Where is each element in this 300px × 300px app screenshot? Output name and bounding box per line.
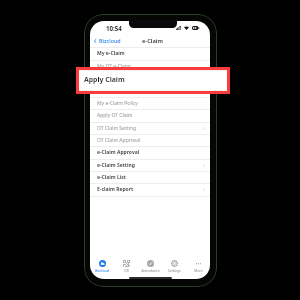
staticText: OT Claim Setting <box>97 125 136 132</box>
staticText: Apply OT Claim <box>97 112 133 119</box>
staticText: Apply Claim <box>97 75 127 82</box>
staticText: QR <box>124 268 129 273</box>
button[interactable]: OT Claim Approval <box>90 134 210 146</box>
button[interactable]: My OT e-Claim <box>90 60 210 72</box>
staticText: My OT e-Claim <box>97 63 131 70</box>
staticText: E-claim Report <box>97 186 134 193</box>
button[interactable]: E-claim Report <box>90 183 210 195</box>
staticText: e-Claim Approval <box>97 149 140 156</box>
button[interactable]: QR Scan <box>114 255 138 276</box>
button[interactable]: My e-Claim <box>90 47 210 59</box>
staticText: My e-Claim Policy <box>97 100 138 107</box>
other: Settings <box>171 260 178 267</box>
button[interactable]: Settings <box>162 255 186 276</box>
button[interactable]: Bizcloud <box>93 34 121 47</box>
other: Attendance <box>147 260 154 267</box>
button[interactable]: Apply OT Claim <box>90 109 210 121</box>
button[interactable]: OT Claim Setting <box>90 122 210 134</box>
button[interactable]: Apply e-Claim <box>90 84 210 96</box>
button[interactable]: e-Claim List <box>90 171 210 183</box>
staticText: Settings <box>168 268 181 273</box>
button[interactable]: Attendance <box>138 255 162 276</box>
button[interactable]: e-Claim Setting <box>90 159 210 171</box>
staticText: 10:54 <box>106 24 122 32</box>
staticText: More <box>194 268 203 273</box>
button[interactable]: More <box>186 255 210 276</box>
other: Bizcloud <box>99 260 106 267</box>
staticText: Attendance <box>141 268 160 273</box>
staticText: Apply e-Claim <box>97 87 130 94</box>
staticText: e-Claim Setting <box>97 162 135 169</box>
staticText: e-Claim List <box>97 174 126 181</box>
button[interactable]: Apply Claim <box>90 72 210 84</box>
staticText: Apply Claim <box>84 75 125 84</box>
other: More <box>195 260 202 267</box>
staticText: Bizcloud <box>95 268 109 273</box>
other: QR Scan <box>123 260 130 267</box>
button[interactable]: e-Claim Approval <box>90 146 210 158</box>
staticText: Bizcloud <box>99 37 121 44</box>
staticText: OT Claim Approval <box>97 137 141 144</box>
staticText: e-Claim <box>142 37 163 45</box>
button[interactable]: My e-Claim Policy <box>90 97 210 109</box>
staticText: My e-Claim <box>97 50 125 57</box>
button[interactable]: Bizcloud <box>90 255 114 276</box>
